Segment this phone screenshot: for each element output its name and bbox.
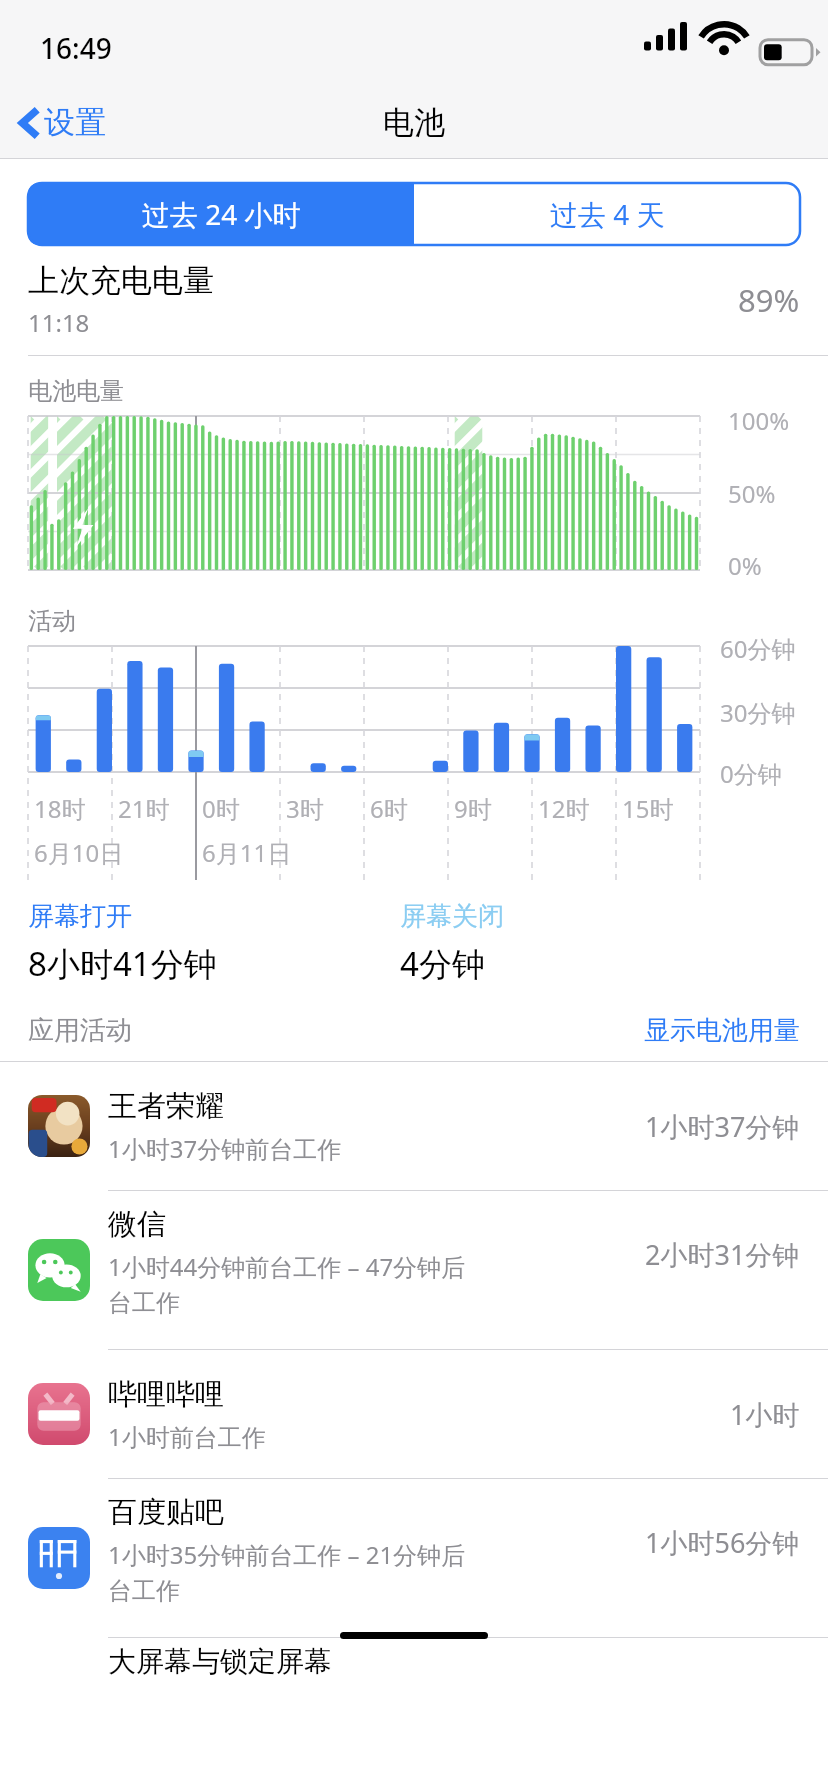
button[interactable]: 微信 — [0, 1191, 828, 1349]
staticText: 6时 — [370, 792, 408, 825]
staticText: 21时 — [118, 792, 170, 825]
staticText: 6月11日 — [202, 836, 292, 869]
staticText: 1小时37分钟 — [645, 1108, 800, 1145]
staticText: 台工作 — [108, 1288, 180, 1318]
button[interactable]: 哔哩哔哩 — [0, 1350, 828, 1478]
button[interactable]: 百度贴吧 — [0, 1479, 828, 1637]
staticText: 1小时 — [730, 1396, 800, 1433]
staticText: 显示电池用量 — [644, 1014, 800, 1047]
staticText: 台工作 — [108, 1576, 180, 1606]
staticText: 50% — [728, 477, 776, 510]
staticText: 哔哩哔哩 — [108, 1376, 224, 1413]
staticText: 屏幕关闭 — [400, 900, 504, 933]
staticText: 8小时41分钟 — [28, 941, 217, 986]
staticText: 0时 — [202, 792, 240, 825]
staticText: 11:18 — [28, 306, 90, 339]
staticText: 设置 — [44, 103, 106, 142]
staticText: 活动 — [28, 606, 76, 636]
button[interactable]: 设置 — [0, 97, 118, 148]
staticText: 1小时35分钟前台工作 – 21分钟后 — [108, 1538, 466, 1571]
staticText: 电池 — [383, 103, 445, 142]
staticText: 电池电量 — [28, 376, 124, 406]
staticText: 18时 — [34, 792, 86, 825]
staticText: 大屏幕与锁定屏幕 — [108, 1644, 332, 1679]
staticText: 100% — [728, 404, 790, 437]
staticText: 1小时44分钟前台工作 – 47分钟后 — [108, 1250, 466, 1283]
staticText: 0分钟 — [720, 757, 782, 790]
staticText: 9时 — [454, 792, 492, 825]
staticText: 王者荣耀 — [108, 1088, 224, 1125]
staticText: 0% — [728, 549, 762, 582]
button[interactable]: 过去 24 小时 — [28, 183, 414, 245]
staticText: 屏幕打开 — [28, 900, 132, 933]
staticText: 2小时31分钟 — [645, 1236, 800, 1273]
staticText: 微信 — [108, 1206, 166, 1243]
button[interactable]: 显示电池用量 — [644, 1014, 800, 1047]
staticText: 12时 — [538, 792, 590, 825]
staticText: 1小时37分钟前台工作 — [108, 1132, 342, 1165]
staticText: 上次充电电量 — [28, 261, 214, 300]
staticText: 15时 — [622, 792, 674, 825]
staticText: 89% — [738, 279, 800, 321]
staticText: 3时 — [286, 792, 324, 825]
staticText: 30分钟 — [720, 696, 796, 729]
staticText: 过去 24 小时 — [142, 195, 301, 233]
staticText: 16:49 — [40, 29, 112, 67]
staticText: 应用活动 — [28, 1014, 132, 1047]
staticText: 6月10日 — [34, 836, 124, 869]
staticText: 1小时前台工作 — [108, 1420, 266, 1453]
staticText: 过去 4 天 — [550, 195, 665, 233]
staticText: 百度贴吧 — [108, 1494, 224, 1531]
other: Signal, Wi-Fi, Battery — [644, 32, 794, 64]
button[interactable]: 过去 4 天 — [414, 183, 800, 245]
button[interactable]: 王者荣耀 — [0, 1062, 828, 1190]
staticText: 4分钟 — [400, 941, 485, 986]
staticText: 1小时56分钟 — [645, 1524, 800, 1561]
staticText: 60分钟 — [720, 632, 796, 665]
